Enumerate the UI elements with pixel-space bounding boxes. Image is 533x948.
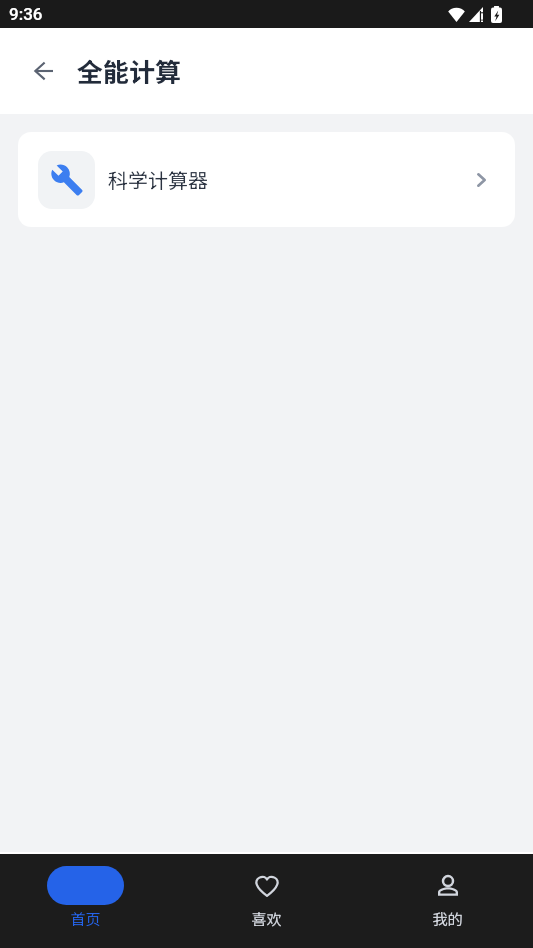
other: Battery charging — [491, 6, 502, 23]
staticText: 喜欢 — [251, 908, 282, 930]
button[interactable]: Favourites — [189, 854, 344, 948]
button[interactable]: 首页 — [8, 854, 163, 948]
staticText: 全能计算 — [77, 52, 182, 90]
button[interactable]: Back — [20, 48, 66, 94]
staticText: 我的 — [432, 908, 463, 930]
staticText: 科学计算器 — [108, 165, 208, 194]
other: Profile — [438, 876, 458, 896]
staticText: 9:36 — [9, 4, 43, 24]
other: Favourites — [254, 875, 280, 897]
staticText: 首页 — [70, 908, 101, 930]
button[interactable]: Profile — [370, 854, 525, 948]
button[interactable]: 科学计算器 — [18, 132, 515, 227]
other: Mobile signal — [469, 7, 483, 22]
other: Wi-Fi — [448, 7, 465, 22]
